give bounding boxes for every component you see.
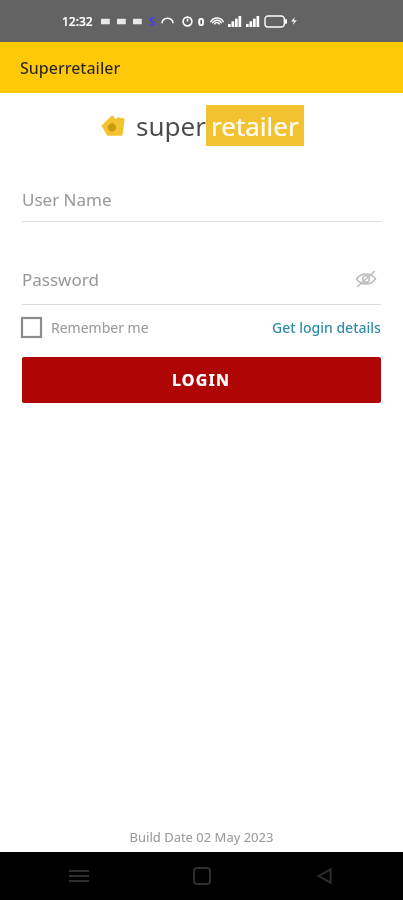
button[interactable]: LOGIN	[22, 357, 381, 403]
staticText: Get login details	[272, 318, 381, 337]
button[interactable]: Show password	[351, 264, 381, 294]
staticText: 0	[198, 14, 205, 29]
staticText: super	[136, 108, 206, 143]
staticText: Superretailer	[20, 57, 121, 79]
staticText: LOGIN	[172, 369, 231, 391]
staticText: S	[149, 13, 156, 29]
staticText: 12:32	[62, 13, 93, 29]
button[interactable]: Remember me	[22, 318, 149, 337]
staticText: User Name	[22, 188, 381, 211]
button[interactable]: Menu	[57, 854, 101, 898]
staticText: Build Date 02 May 2023	[0, 828, 403, 846]
staticText: retailer	[211, 108, 299, 143]
staticText: Remember me	[51, 318, 149, 337]
staticText: Password	[22, 268, 351, 291]
button[interactable]: Home	[180, 854, 224, 898]
button[interactable]: Back	[303, 854, 347, 898]
button[interactable]: Get login details	[272, 318, 381, 337]
